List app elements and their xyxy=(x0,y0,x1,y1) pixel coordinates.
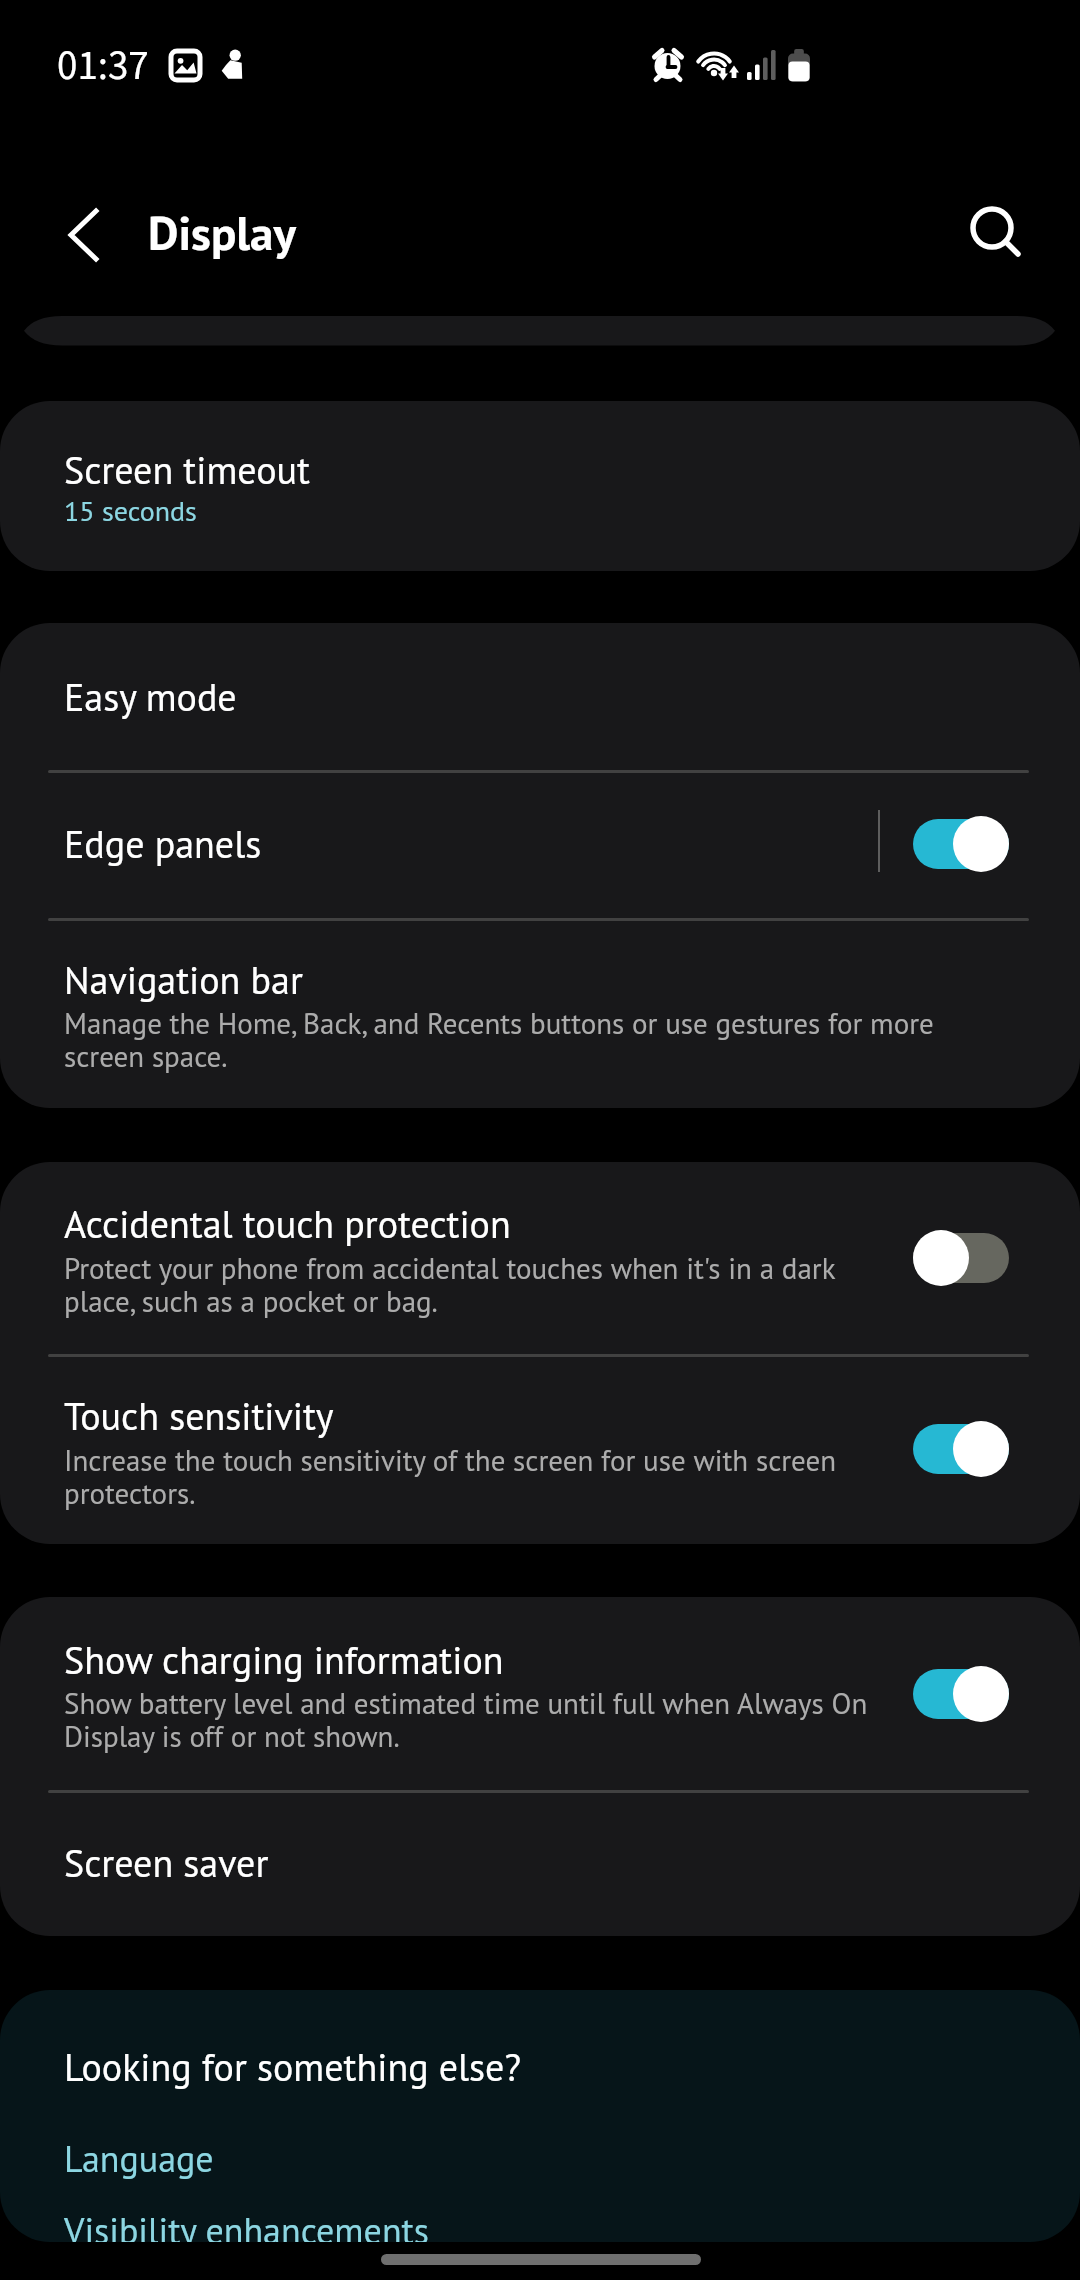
staticText: Visibility enhancements xyxy=(64,2207,429,2242)
button[interactable] xyxy=(0,310,1080,352)
button[interactable]: On xyxy=(905,1661,1015,1727)
staticText: Show battery level and estimated time un… xyxy=(64,1684,868,1755)
button[interactable]: On xyxy=(905,811,1015,877)
staticText: Increase the touch sensitivity of the sc… xyxy=(64,1441,837,1512)
staticText: 01:37 xyxy=(57,37,149,95)
button[interactable] xyxy=(0,1597,1080,1790)
staticText: 15 seconds xyxy=(64,492,197,528)
staticText: Touch sensitivity xyxy=(64,1391,334,1440)
staticText: Protect your phone from accidental touch… xyxy=(64,1249,836,1320)
button[interactable]: Visibility enhancements xyxy=(0,2192,1080,2242)
staticText: Easy mode xyxy=(64,672,237,721)
staticText: Screen saver xyxy=(64,1838,269,1887)
staticText: Screen timeout xyxy=(64,445,310,494)
button[interactable] xyxy=(0,401,1080,571)
button[interactable]: Search xyxy=(952,188,1032,268)
staticText: Navigation bar xyxy=(64,955,303,1004)
button[interactable] xyxy=(0,770,1080,918)
button[interactable]: Off xyxy=(905,1225,1015,1291)
button[interactable] xyxy=(0,1354,1080,1544)
button[interactable] xyxy=(0,1162,1080,1354)
staticText: Manage the Home, Back, and Recents butto… xyxy=(64,1004,934,1075)
button[interactable] xyxy=(0,623,1080,770)
button[interactable]: Language xyxy=(0,2120,1080,2188)
staticText: Language xyxy=(64,2135,214,2182)
staticText: Looking for something else? xyxy=(64,2042,521,2091)
staticText: Accidental touch protection xyxy=(64,1199,511,1248)
button[interactable]: Navigate up xyxy=(40,190,130,280)
button[interactable] xyxy=(0,1790,1080,1936)
button[interactable] xyxy=(0,918,1080,1108)
staticText: Display xyxy=(148,202,296,263)
staticText: Show charging information xyxy=(64,1635,504,1684)
staticText: Edge panels xyxy=(64,819,262,868)
button[interactable]: On xyxy=(905,1416,1015,1482)
